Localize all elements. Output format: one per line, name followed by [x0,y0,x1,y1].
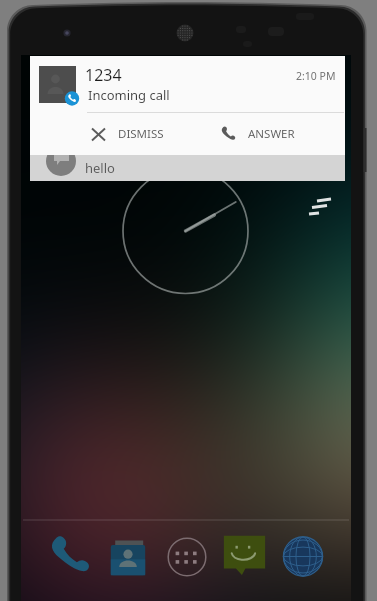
button[interactable]: Browser [283,536,323,577]
staticText: hello [85,159,115,177]
button[interactable]: Phone [47,535,91,577]
staticText: DISMISS [118,126,164,142]
staticText: 2:10 PM [296,69,336,83]
button[interactable]: People [108,539,148,576]
button[interactable]: DISMISS [91,113,211,155]
button[interactable]: 1234 [30,56,345,155]
button[interactable]: hello [30,155,345,181]
button[interactable]: Messaging [223,535,266,575]
staticText: Incoming call [88,86,170,104]
staticText: ANSWER [248,126,295,142]
button[interactable]: ANSWER [220,113,340,155]
button[interactable]: Recent apps [308,197,336,219]
staticText: 1234 [85,64,122,86]
button[interactable]: Apps [167,537,207,577]
